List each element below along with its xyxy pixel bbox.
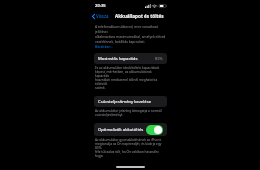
staticText: 83% (155, 56, 163, 61)
staticText: 20:35 (95, 3, 106, 9)
button[interactable]: Csúcsteljesítmény kezelése (94, 96, 167, 107)
button[interactable]: Optimalizált akkutöltés (94, 123, 167, 136)
staticText: Maximális kapacitás (98, 56, 138, 62)
button[interactable]: Bővebben... (95, 44, 114, 48)
button[interactable]: Maximális kapacitás (94, 53, 167, 64)
other: Back (92, 14, 95, 19)
staticText: A telefonakkumulátorod, mire vonatkozó j… (95, 24, 166, 44)
button[interactable]: Optimalizált akkutöltés bekapcsolva (146, 125, 163, 135)
staticText: Akkuállapot és töltés (115, 13, 164, 19)
button[interactable]: Back (87, 11, 112, 21)
staticText: Vissza (96, 13, 109, 19)
staticText: Csúcsteljesítmény kezelése (98, 99, 152, 105)
staticText: Az akkumulátor gyorsabbdésének az iPhone… (95, 138, 166, 158)
staticText: Ez az akkumulátor tárolótöltési kapacitá… (95, 66, 166, 90)
staticText: Optimalizált akkutöltés (98, 127, 144, 133)
staticText: Az akkumulátor jelenleg támogatja a norm… (95, 109, 166, 117)
